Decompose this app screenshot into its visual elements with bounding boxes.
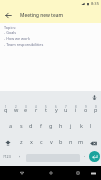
button[interactable]: Voice input [89,92,100,103]
button[interactable]: ?123 [0,151,14,166]
staticText: a [9,122,13,129]
button[interactable]: 7 [61,103,71,119]
button[interactable]: s [16,119,26,135]
button[interactable]: , [14,151,26,166]
staticText: w [14,106,19,113]
staticText: x [30,138,33,145]
staticText: c [40,138,43,145]
button[interactable]: 4 [31,103,41,119]
staticText: . [84,152,86,159]
button[interactable]: 2 [11,103,21,119]
staticText: , [19,152,21,159]
button[interactable]: Change keyboard [89,169,98,178]
staticText: b [59,138,63,145]
staticText: l [90,122,92,129]
button[interactable]: Back [17,168,27,178]
button[interactable]: a [6,119,16,135]
staticText: 7 [65,105,67,109]
button[interactable]: k [76,119,86,135]
staticText: 9 [85,105,87,109]
staticText: 3 [25,105,27,109]
staticText: s [20,122,23,129]
staticText: ?123 [3,154,11,159]
button[interactable]: 6 [51,103,61,119]
staticText: e [24,106,28,113]
staticText: j [70,122,72,129]
button[interactable]: Back [0,7,16,23]
button[interactable]: d [26,119,36,135]
staticText: q [4,106,8,113]
button[interactable]: 8 [71,103,81,119]
button[interactable]: c [36,135,46,151]
staticText: 0 [95,105,97,109]
staticText: o [84,106,88,113]
staticText: p [94,106,98,113]
staticText: 1 [5,105,7,109]
staticText: u [64,106,68,113]
staticText: d [29,122,33,129]
staticText: n [69,138,73,145]
button[interactable]: l [86,119,96,135]
button[interactable]: 5 [41,103,51,119]
staticText: g [49,122,53,129]
staticText: 8 [75,105,77,109]
staticText: t [45,106,47,113]
staticText: f [40,122,42,129]
staticText: v [50,138,53,145]
staticText: 6 [55,105,57,109]
button[interactable]: z [16,135,26,151]
button[interactable]: 3 [21,103,31,119]
button[interactable]: Shift [0,135,16,151]
staticText: Topics: - Goals - How we work - Team res… [4,25,44,47]
button[interactable]: . [80,151,89,166]
staticText: 4 [35,105,37,109]
staticText: k [80,122,83,129]
staticText: i [75,106,77,113]
button[interactable]: m [76,135,86,151]
button[interactable]: j [66,119,76,135]
button[interactable]: n [66,135,76,151]
staticText: r [35,106,38,113]
staticText: 8:35 [91,1,99,6]
staticText: z [20,138,23,145]
button[interactable]: b [56,135,66,151]
button[interactable]: Backspace [86,135,101,151]
button[interactable]: 9 [81,103,91,119]
staticText: m [78,138,84,145]
button[interactable]: Home [46,168,56,178]
staticText: 5 [45,105,47,109]
button[interactable]: 1 [0,103,11,119]
button[interactable]: 0 [91,103,101,119]
button[interactable]: f [36,119,46,135]
staticText: 2 [15,105,17,109]
button[interactable]: Recent apps [73,168,83,178]
staticText: Meeting new team [20,12,63,19]
button[interactable]: Enter [89,151,101,166]
staticText: y [55,106,58,113]
button[interactable]: v [46,135,56,151]
button[interactable]: g [46,119,56,135]
staticText: h [59,122,63,129]
button[interactable]: h [56,119,66,135]
button[interactable]: x [26,135,36,151]
